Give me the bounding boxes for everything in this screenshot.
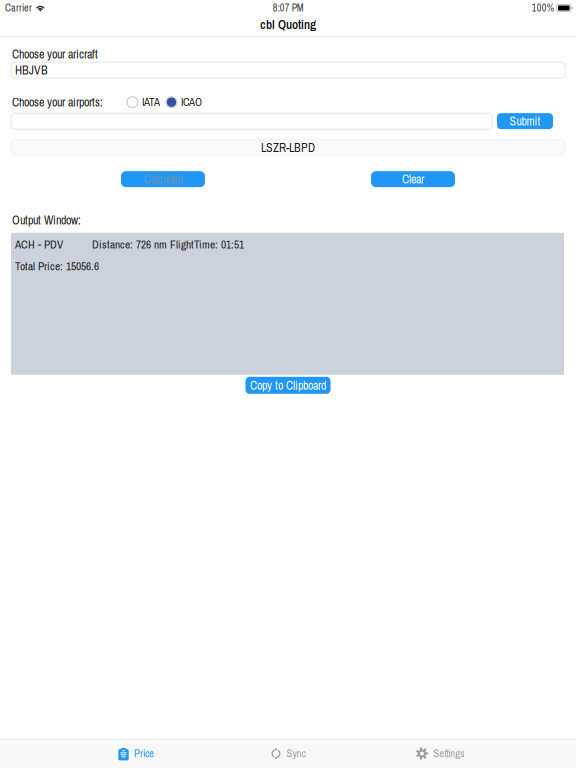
staticText: Calculate bbox=[143, 171, 182, 187]
staticText: Choose your airports: bbox=[12, 94, 103, 110]
staticText: ACH - PDV bbox=[15, 237, 63, 252]
staticText: Submit bbox=[509, 113, 540, 129]
staticText: Price bbox=[134, 746, 154, 761]
button[interactable]: ICAO bbox=[166, 94, 202, 110]
staticText: HBJVB bbox=[15, 62, 48, 78]
button[interactable]: Copy to Clipboard bbox=[245, 377, 330, 394]
staticText: cbl Quoting bbox=[260, 16, 316, 33]
staticText: IATA bbox=[142, 95, 160, 109]
button[interactable]: Settings bbox=[364, 739, 516, 768]
button[interactable]: IATA bbox=[127, 94, 160, 110]
button[interactable]: Sync bbox=[212, 739, 364, 768]
button[interactable]: Clear bbox=[371, 171, 455, 187]
staticText: 8:07 PM bbox=[273, 1, 304, 15]
staticText: Copy to Clipboard bbox=[250, 377, 326, 393]
staticText: ICAO bbox=[181, 95, 202, 109]
button[interactable]: Price bbox=[60, 739, 212, 768]
staticText: Output Window: bbox=[12, 212, 81, 228]
staticText: 100% bbox=[532, 1, 554, 15]
button[interactable]: Submit bbox=[497, 113, 553, 129]
staticText: Total Price: 15056.6 bbox=[15, 259, 99, 274]
staticText: Choose your aricraft bbox=[12, 46, 98, 62]
staticText: Distance: 726 nm FlightTime: 01:51 bbox=[92, 237, 244, 252]
staticText: Carrier bbox=[5, 1, 32, 15]
staticText: Settings bbox=[433, 746, 464, 761]
staticText: Clear bbox=[402, 171, 424, 187]
staticText: Sync bbox=[287, 746, 306, 761]
button[interactable]: Calculate bbox=[121, 171, 205, 187]
staticText: LSZR-LBPD bbox=[261, 140, 315, 156]
